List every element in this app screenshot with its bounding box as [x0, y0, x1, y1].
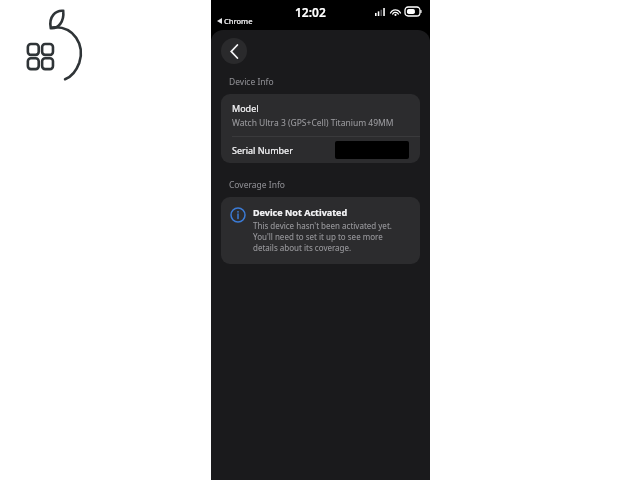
staticText: Chrome [224, 16, 253, 26]
button[interactable]: Back [221, 38, 247, 64]
staticText: Device Info [229, 76, 274, 88]
button[interactable]: Serial Number [221, 137, 420, 163]
staticText: Watch Ultra 3 (GPS+Cell) Titanium 49MM [232, 117, 394, 129]
staticText: Serial Number [232, 144, 293, 156]
staticText: This device hasn't been activated yet. Y… [253, 220, 408, 253]
button[interactable]: Device Not Activated [221, 197, 420, 264]
button[interactable]: Model [221, 94, 420, 136]
staticText: Device Not Activated [253, 206, 348, 218]
staticText: Model [232, 102, 259, 114]
staticText: Coverage Info [229, 179, 285, 191]
staticText: 12:02 [295, 4, 326, 20]
